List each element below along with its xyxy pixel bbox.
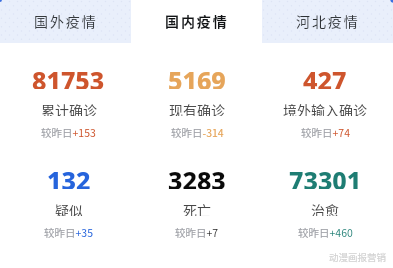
staticText: 国内疫情 (165, 11, 229, 31)
staticText: 3283 (168, 163, 226, 189)
button[interactable]: 国内疫情 (131, 0, 262, 43)
button[interactable]: 河北疫情 (262, 0, 393, 43)
staticText: 境外输入确诊 (283, 100, 367, 116)
staticText: 427 (303, 63, 347, 89)
button[interactable]: 3283 (133, 162, 261, 242)
staticText: 较昨日+74 (301, 125, 350, 139)
button[interactable]: 73301 (261, 162, 389, 242)
staticText: 疑似 (55, 200, 83, 216)
button[interactable]: 81753 (4, 62, 133, 142)
staticText: 现有确诊 (169, 100, 225, 116)
staticText: 81753 (32, 63, 105, 89)
staticText: 累计确诊 (41, 100, 97, 116)
button[interactable]: 132 (4, 162, 133, 242)
staticText: 动漫画报营销 (329, 250, 387, 264)
staticText: 较昨日+35 (44, 225, 93, 239)
staticText: 73301 (289, 163, 362, 189)
button[interactable]: 427 (261, 62, 389, 142)
button[interactable]: 国外疫情 (0, 0, 131, 43)
button[interactable]: 5169 (133, 62, 261, 142)
staticText: 较昨日+7 (175, 225, 219, 239)
staticText: 132 (47, 163, 91, 189)
staticText: 较昨日-314 (171, 125, 224, 139)
staticText: 5169 (168, 63, 226, 89)
staticText: 治愈 (311, 200, 339, 216)
staticText: 国外疫情 (34, 11, 98, 31)
staticText: 河北疫情 (296, 11, 360, 31)
staticText: 死亡 (183, 200, 211, 216)
staticText: 较昨日+153 (41, 125, 96, 139)
staticText: 较昨日+460 (298, 225, 353, 239)
